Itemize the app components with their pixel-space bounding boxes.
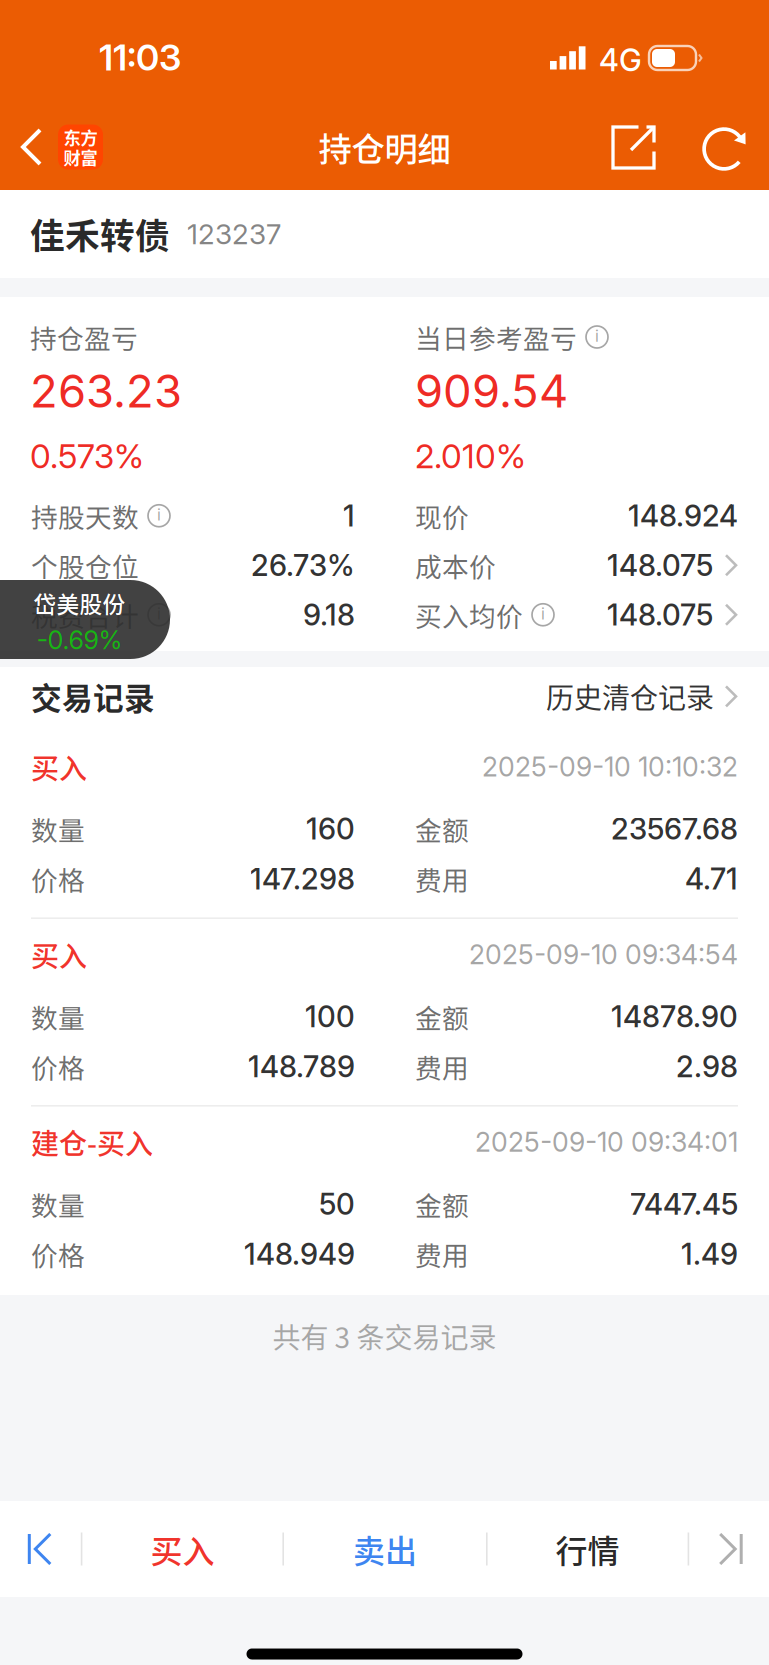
staticText: 成本价 xyxy=(415,546,496,584)
staticText: 263.23 xyxy=(30,364,182,418)
staticText: 909.54 xyxy=(415,364,568,418)
staticText: 金额 xyxy=(415,810,469,848)
staticText: 费用 xyxy=(415,1047,469,1086)
staticText: 买入 xyxy=(31,934,87,975)
staticText: 2025-09-10 09:34:01 xyxy=(475,1126,738,1158)
staticText: 现价 xyxy=(415,496,469,535)
staticText: 100 xyxy=(305,999,355,1034)
staticText: 持仓明细 xyxy=(318,123,450,171)
staticText: 买入 xyxy=(31,747,87,787)
staticText: 160 xyxy=(306,811,355,847)
staticText: 当日参考盈亏 xyxy=(415,318,577,356)
staticText: 2.010% xyxy=(415,436,526,476)
staticText: 123237 xyxy=(187,217,281,251)
staticText: 2025-09-10 10:10:32 xyxy=(482,751,738,783)
staticText: i xyxy=(157,505,161,524)
staticText: 26.73% xyxy=(251,547,355,583)
staticText: 财富 xyxy=(63,144,97,170)
staticText: 50 xyxy=(319,1186,355,1222)
staticText: -0.69% xyxy=(36,625,122,655)
staticText: 税费合计 xyxy=(31,595,139,634)
staticText: 共有 3 条交易记录 xyxy=(272,1316,496,1356)
staticText: 2025-09-10 09:34:54 xyxy=(469,938,738,971)
staticText: 佳禾转债 xyxy=(30,209,170,259)
button[interactable]: Back xyxy=(0,104,117,190)
staticText: 4G xyxy=(599,41,642,78)
staticText: i xyxy=(541,604,545,623)
button[interactable]: Previous xyxy=(0,1501,81,1597)
staticText: 价格 xyxy=(31,860,85,898)
staticText: i xyxy=(157,604,161,623)
staticText: 金额 xyxy=(415,997,469,1036)
button[interactable]: Share xyxy=(591,104,679,190)
button[interactable]: 历史清仓记录 xyxy=(546,660,738,732)
staticText: 148.924 xyxy=(628,498,738,533)
staticText: 买入 xyxy=(150,1526,214,1572)
staticText: 费用 xyxy=(415,860,469,898)
staticText: 卖出 xyxy=(353,1526,417,1572)
staticText: 数量 xyxy=(31,997,85,1036)
staticText: 数量 xyxy=(31,810,85,848)
staticText: 费用 xyxy=(415,1235,469,1273)
staticText: 东方 xyxy=(63,124,97,150)
staticText: 金额 xyxy=(415,1185,469,1223)
staticText: 9.18 xyxy=(303,597,355,632)
staticText: 1 xyxy=(343,498,355,533)
staticText: 价格 xyxy=(31,1235,85,1273)
staticText: 147.298 xyxy=(250,861,355,897)
staticText: 4.71 xyxy=(685,861,738,897)
button[interactable]: Next xyxy=(689,1501,769,1597)
staticText: 价格 xyxy=(31,1047,85,1086)
staticText: 148.789 xyxy=(248,1049,355,1084)
button[interactable]: 卖出 xyxy=(284,1501,486,1597)
staticText: 个股仓位 xyxy=(31,546,139,584)
staticText: 建仓-买入 xyxy=(31,1122,153,1162)
button[interactable]: 行情 xyxy=(488,1501,688,1597)
staticText: 数量 xyxy=(31,1185,85,1223)
staticText: 持股天数 xyxy=(31,496,139,535)
staticText: 岱美股份 xyxy=(33,587,125,619)
staticText: 交易记录 xyxy=(31,674,155,719)
staticText: 行情 xyxy=(556,1526,620,1572)
staticText: 148.075 xyxy=(607,547,713,583)
button[interactable]: 买入 xyxy=(82,1501,282,1597)
staticText: 148.949 xyxy=(244,1236,355,1272)
staticText: i xyxy=(595,326,599,346)
staticText: 7447.45 xyxy=(630,1186,738,1222)
button[interactable]: Refresh xyxy=(679,104,769,190)
staticText: 1.49 xyxy=(681,1236,738,1272)
staticText: 14878.90 xyxy=(611,999,738,1034)
staticText: 23567.68 xyxy=(611,811,738,847)
staticText: 历史清仓记录 xyxy=(546,676,714,717)
staticText: 买入均价 xyxy=(415,595,523,634)
staticText: 0.573% xyxy=(30,436,144,476)
staticText: 持仓盈亏 xyxy=(30,318,138,356)
staticText: 148.075 xyxy=(607,597,713,632)
staticText: 11:03 xyxy=(99,36,181,79)
staticText: 2.98 xyxy=(676,1049,738,1084)
